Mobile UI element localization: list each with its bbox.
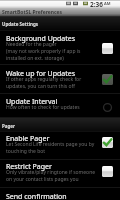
button[interactable]: Send confirmation xyxy=(0,188,120,200)
staticText: Update Settings xyxy=(2,21,39,27)
button[interactable]: Enable Pager xyxy=(0,132,120,160)
staticText: Send confirmation xyxy=(6,192,67,200)
staticText: 2:36 xyxy=(90,0,103,7)
staticText: Needed for the pager (may not work prope… xyxy=(6,41,97,62)
staticText: Pager xyxy=(2,123,16,129)
staticText: How often to check for updates xyxy=(6,104,80,111)
staticText: Restrict Pager xyxy=(6,162,52,172)
staticText: Only vibrate/play ringtone if someone on… xyxy=(6,169,97,183)
button[interactable]: Background Updates xyxy=(0,31,120,65)
staticText: SmartBotSL Preferences xyxy=(2,9,63,16)
staticText: If other apps regularly check for update… xyxy=(6,76,97,90)
staticText: Wake up for Updates xyxy=(6,69,76,79)
staticText: Let Second Life residents page you by to… xyxy=(6,141,97,155)
staticText: Background Updates xyxy=(6,34,76,44)
button[interactable]: Wake up for Updates xyxy=(0,65,120,94)
staticText: AM xyxy=(104,1,111,6)
button[interactable]: Restrict Pager xyxy=(0,160,120,188)
staticText: Update Interval xyxy=(6,97,58,107)
staticText: Enable Pager xyxy=(6,134,50,144)
button[interactable]: Update Interval xyxy=(0,94,120,118)
